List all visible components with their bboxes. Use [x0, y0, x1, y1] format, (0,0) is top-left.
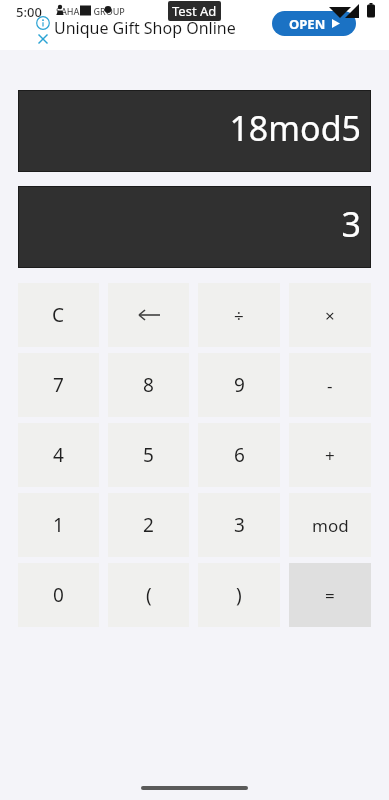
button[interactable]: OPEN: [272, 11, 356, 36]
staticText: OPEN: [289, 15, 326, 33]
staticText: +: [325, 444, 335, 467]
staticText: =: [325, 584, 335, 607]
staticText: ): [236, 582, 242, 608]
staticText: 7: [53, 372, 64, 398]
button[interactable]: 3: [18, 186, 371, 268]
staticText: Test Ad: [172, 2, 217, 20]
button[interactable]: Backspace: [108, 283, 189, 347]
button[interactable]: 4: [18, 423, 99, 487]
staticText: 3: [234, 512, 245, 538]
staticText: Unique Gift Shop Online: [54, 17, 236, 39]
button[interactable]: Ad information: [36, 16, 50, 30]
staticText: 3: [341, 201, 361, 247]
staticText: 1: [53, 512, 64, 538]
button[interactable]: 8: [108, 353, 189, 417]
staticText: ÷: [234, 304, 244, 327]
staticText: mod: [312, 514, 349, 537]
staticText: 5:00: [16, 3, 42, 21]
staticText: 2: [143, 512, 154, 538]
staticText: ×: [325, 304, 335, 327]
button[interactable]: C: [18, 283, 99, 347]
button[interactable]: ÷: [198, 283, 280, 347]
staticText: 9: [234, 372, 245, 398]
button[interactable]: 1: [18, 493, 99, 557]
button[interactable]: 7: [18, 353, 99, 417]
staticText: 5: [143, 442, 154, 468]
staticText: C: [52, 302, 65, 328]
button[interactable]: ): [198, 563, 280, 627]
button[interactable]: 9: [198, 353, 280, 417]
button[interactable]: 6: [198, 423, 280, 487]
staticText: SAHARA GROUP: [56, 5, 125, 17]
button[interactable]: -: [289, 353, 371, 417]
staticText: (: [146, 582, 152, 608]
button[interactable]: 2: [108, 493, 189, 557]
staticText: -: [327, 374, 333, 397]
button[interactable]: (: [108, 563, 189, 627]
button[interactable]: mod: [289, 493, 371, 557]
button[interactable]: Close ad: [36, 32, 50, 46]
button[interactable]: 3: [198, 493, 280, 557]
button[interactable]: +: [289, 423, 371, 487]
staticText: 4: [53, 442, 64, 468]
button[interactable]: ×: [289, 283, 371, 347]
button[interactable]: 0: [18, 563, 99, 627]
staticText: 8: [143, 372, 154, 398]
button[interactable]: =: [289, 563, 371, 627]
staticText: 0: [53, 582, 64, 608]
button[interactable]: 18mod5: [18, 90, 371, 172]
staticText: 6: [234, 442, 245, 468]
button[interactable]: 5: [108, 423, 189, 487]
staticText: 18mod5: [229, 105, 361, 151]
